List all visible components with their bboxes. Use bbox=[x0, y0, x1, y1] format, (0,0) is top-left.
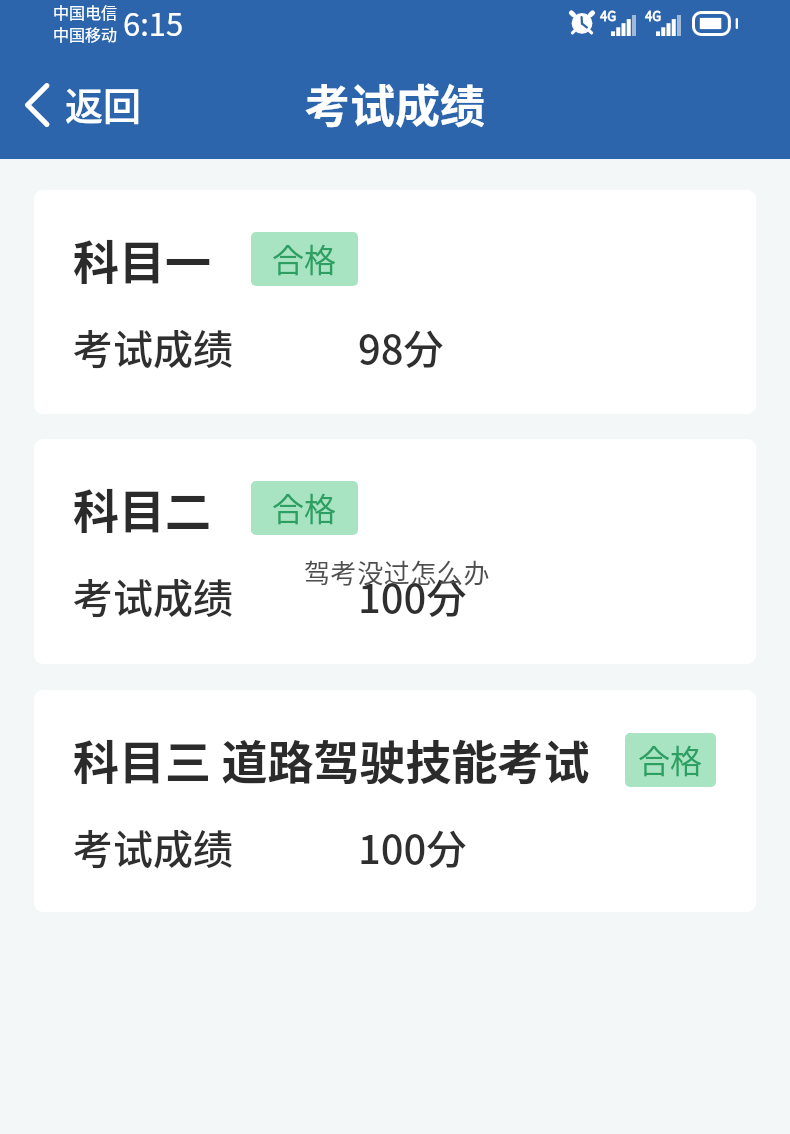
staticText: 考试成绩 bbox=[73, 567, 233, 625]
button[interactable]: 科目三 道路驾驶技能考试 bbox=[34, 690, 756, 912]
staticText: 考试成绩 bbox=[73, 318, 233, 376]
staticText: 4G bbox=[600, 6, 617, 25]
staticText: 6:15 bbox=[123, 0, 184, 45]
staticText: 中国移动 bbox=[53, 22, 118, 45]
other: Back bbox=[24, 84, 50, 126]
other: Alarm set bbox=[569, 9, 595, 35]
staticText: 返回 bbox=[65, 76, 142, 131]
staticText: 合格 bbox=[272, 484, 337, 530]
other: 4G signal strength bbox=[600, 8, 636, 36]
staticText: 中国电信 bbox=[53, 0, 118, 23]
staticText: 100分 bbox=[358, 818, 467, 876]
staticText: 科目二 bbox=[73, 475, 211, 542]
staticText: 驾考没过怎么办 bbox=[304, 553, 491, 591]
staticText: 考试成绩 bbox=[305, 71, 486, 136]
staticText: 98分 bbox=[358, 318, 444, 376]
button[interactable]: Back bbox=[14, 73, 154, 144]
staticText: 科目一 bbox=[73, 226, 211, 293]
staticText: 考试成绩 bbox=[73, 818, 233, 876]
other: 4G signal strength bbox=[645, 8, 681, 36]
button[interactable]: 科目二 bbox=[34, 439, 756, 664]
button[interactable]: 科目一 bbox=[34, 190, 756, 414]
staticText: 合格 bbox=[272, 235, 337, 281]
staticText: 科目三 道路驾驶技能考试 bbox=[73, 726, 590, 793]
staticText: 合格 bbox=[638, 736, 703, 782]
other: Battery bbox=[692, 11, 738, 36]
staticText: 4G bbox=[645, 6, 662, 25]
staticText: 100分 bbox=[358, 567, 467, 625]
